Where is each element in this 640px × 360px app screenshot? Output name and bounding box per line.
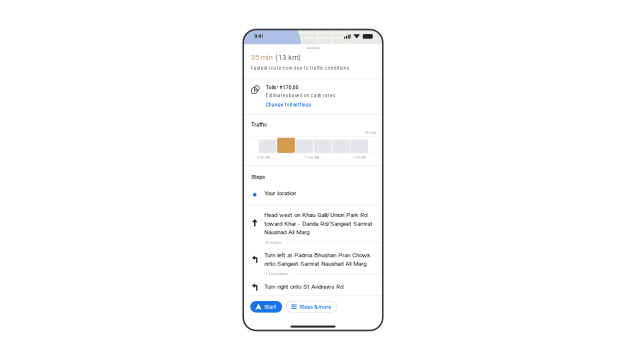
staticText: 9:41	[254, 33, 264, 39]
staticText: Start	[264, 304, 276, 310]
staticText: (13 km)	[275, 53, 301, 62]
staticText: Fastest route now due to traffic conditi…	[251, 65, 349, 71]
staticText: Change toll settings	[266, 102, 311, 108]
staticText: 1:30 PM	[353, 155, 366, 160]
staticText: Steps	[251, 174, 265, 180]
staticText: 35 min	[251, 53, 273, 62]
staticText: 40 min	[365, 130, 376, 135]
button[interactable]: Change toll settings	[266, 98, 311, 108]
staticText: Estimates based on cash rates	[266, 93, 335, 98]
staticText: Head west on Khau Galli/Union Park Rd to…	[264, 211, 372, 236]
button[interactable]: Turn right onto St Andrews Rd	[243, 278, 383, 295]
staticText: Steps & more	[299, 304, 331, 310]
staticText: 11:30 AM	[304, 155, 319, 160]
staticText: 9:30 AM	[257, 155, 270, 160]
staticText: 30 meters	[265, 240, 281, 245]
button[interactable]: Steps & more	[286, 301, 337, 312]
button[interactable]: Your location	[243, 180, 383, 205]
staticText: 1.3 kilometers	[265, 272, 288, 276]
staticText: Tolls • ₹170.00	[266, 85, 299, 90]
staticText: Turn left at Padma Bhushan Pran Chowk on…	[264, 252, 370, 267]
staticText: Traffic	[251, 122, 267, 128]
button[interactable]: Turn left at Padma Bhushan Pran Chowk on…	[243, 247, 383, 271]
staticText: Turn right onto St Andrews Rd	[264, 283, 343, 290]
button[interactable]: Head west on Khau Galli/Union Park Rd to…	[243, 205, 383, 239]
button[interactable]: Start	[250, 301, 282, 313]
staticText: Your location	[264, 190, 296, 197]
